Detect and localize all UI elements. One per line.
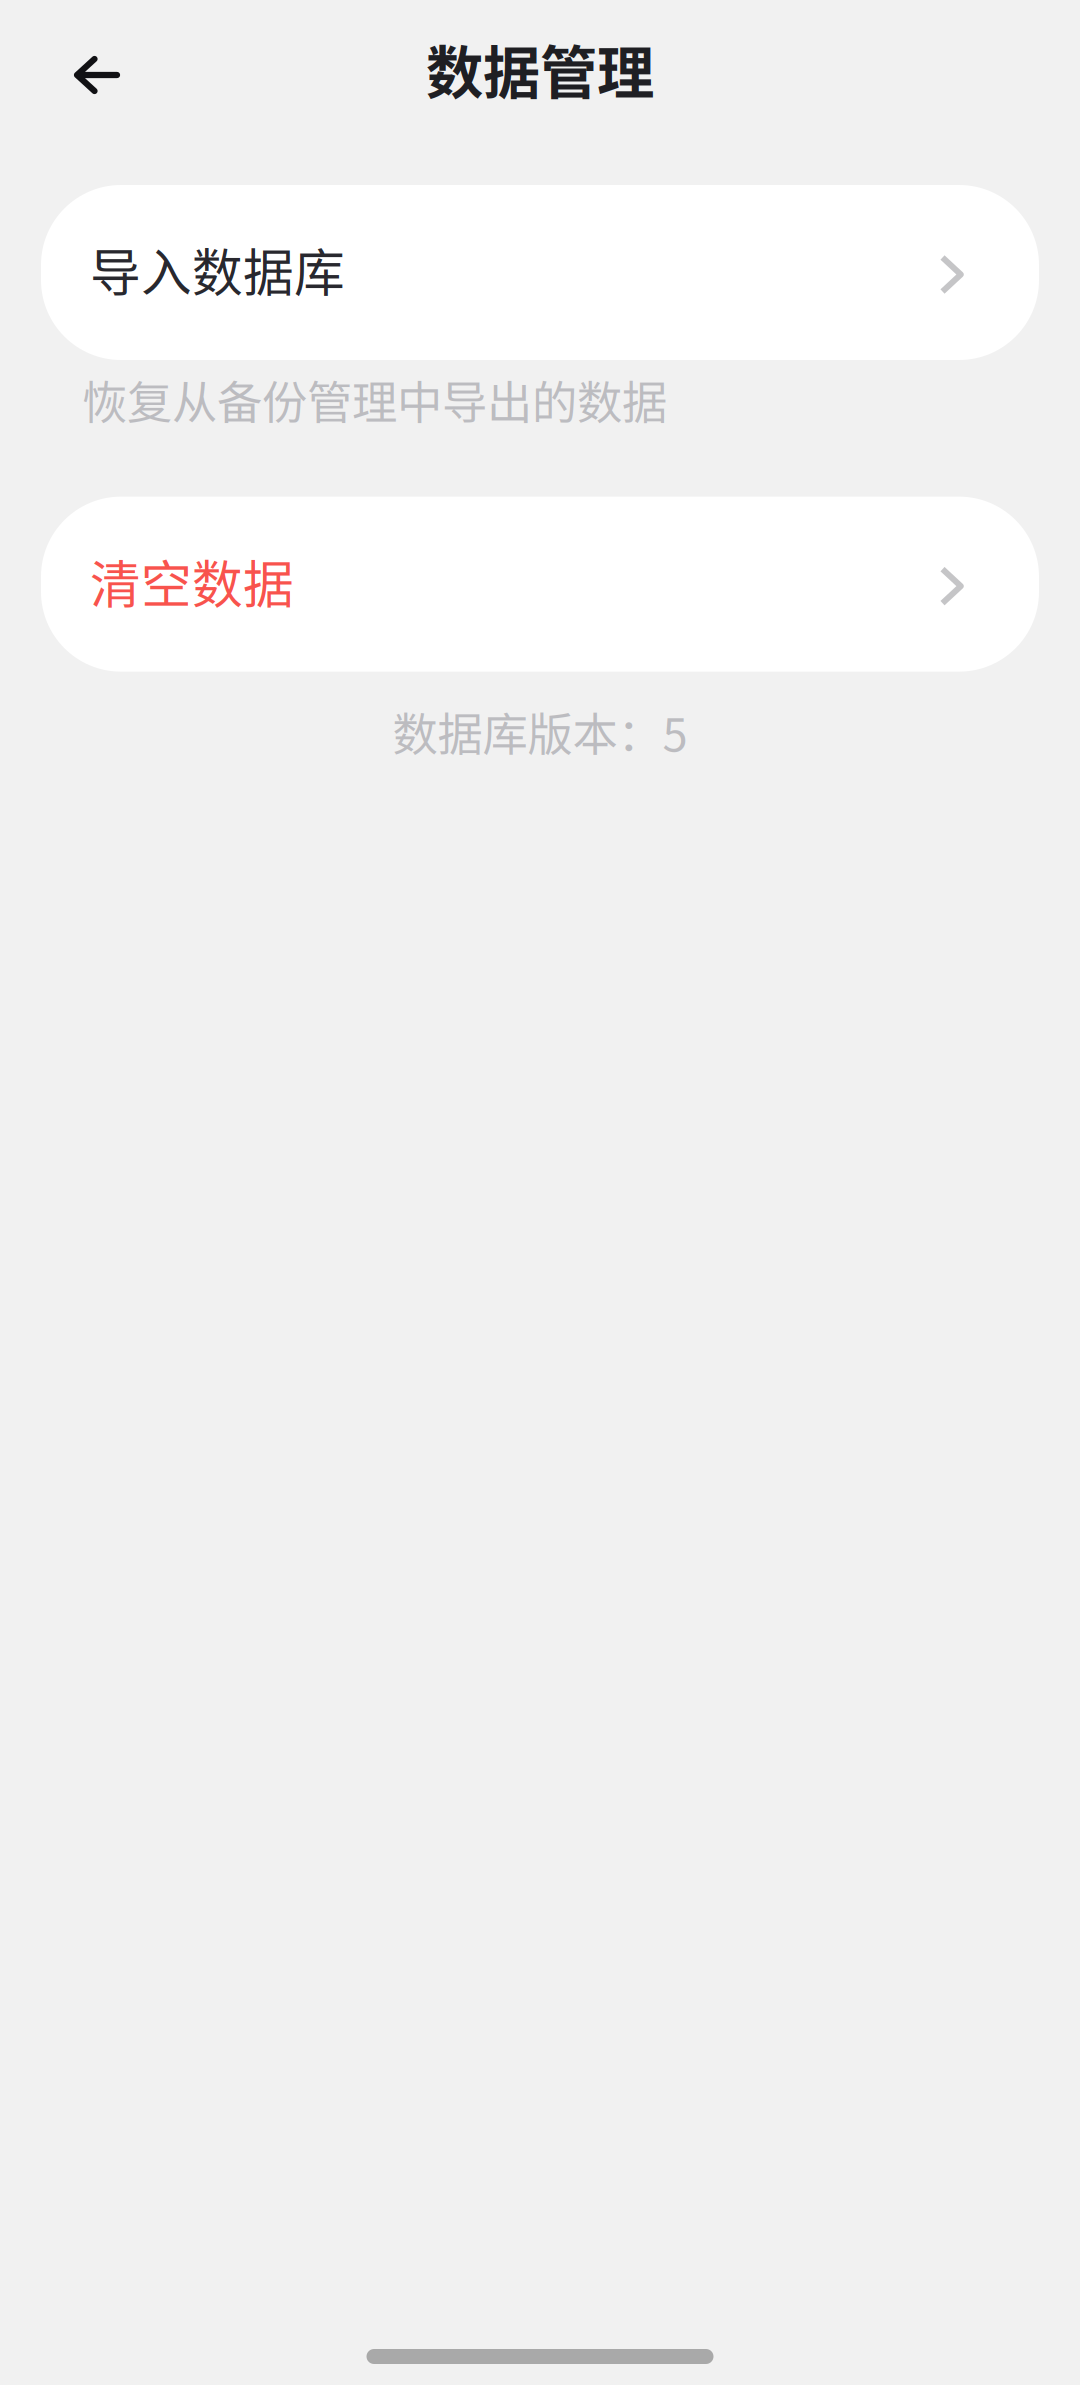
staticText: 恢复从备份管理中导出的数据 (82, 367, 667, 433)
button[interactable]: 清空数据 (41, 497, 1039, 672)
staticText: 数据库版本：5 (392, 699, 687, 764)
staticText: 导入数据库 (90, 233, 345, 306)
button[interactable]: 导入数据库 (41, 185, 1039, 360)
button[interactable]: Back (41, 19, 153, 131)
staticText: 清空数据 (90, 544, 294, 618)
staticText: 数据管理 (426, 27, 654, 110)
